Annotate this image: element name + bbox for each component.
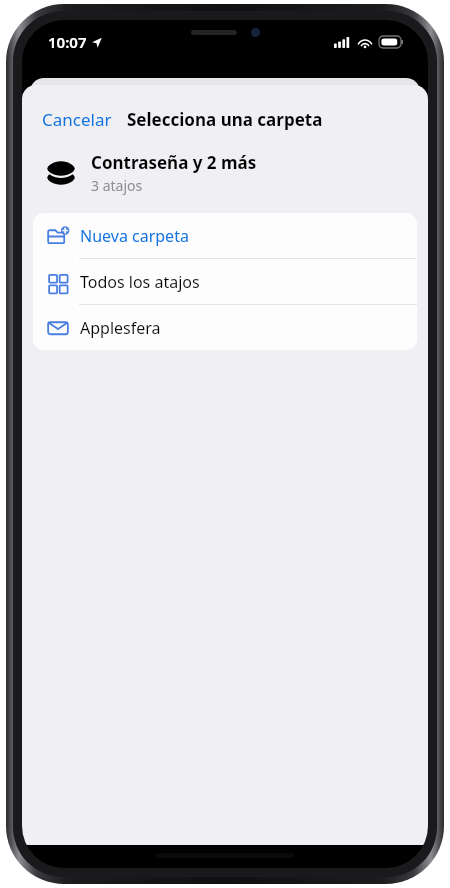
button[interactable]: Applesfera folder [33,305,417,350]
other: Applesfera folder [46,316,70,340]
staticText: 3 atajos [91,176,143,195]
staticText: Applesfera [80,317,161,339]
staticText: Todos los atajos [80,271,200,293]
button[interactable]: Cancelar [40,102,114,137]
other: All shortcuts [46,270,70,294]
staticText: Contraseña y 2 más [91,151,257,174]
button[interactable]: All shortcuts [33,259,417,304]
staticText: Nueva carpeta [80,225,189,247]
other: New folder [46,224,70,248]
button[interactable]: New folder [33,213,417,258]
staticText: 10:07 [48,32,87,52]
staticText: Selecciona una carpeta [127,108,323,131]
staticText: Cancelar [42,108,112,131]
button[interactable]: Contraseña y 2 más [42,151,408,195]
